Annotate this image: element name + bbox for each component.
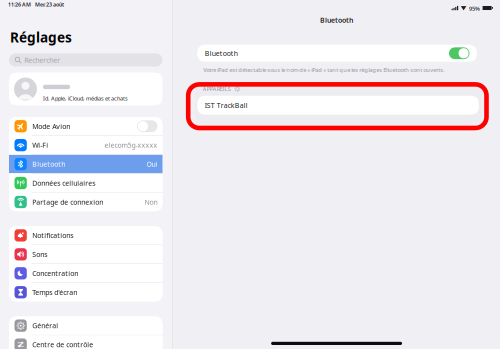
button[interactable]: Wi-Fi (9, 136, 162, 154)
staticText: elecom5g-xxxxx (104, 140, 157, 150)
staticText: Bluetooth (32, 159, 65, 169)
staticText: Bluetooth (205, 48, 238, 58)
staticText: Réglages (10, 28, 72, 46)
staticText: 11:26 AM (8, 1, 31, 8)
staticText: Id. Apple, iCloud, médias et achats (43, 95, 128, 102)
staticText: Centre de contrôle (32, 340, 93, 349)
staticText: Bluetooth (320, 15, 353, 25)
staticText: Données cellulaires (32, 178, 95, 188)
button[interactable]: Id. Apple, iCloud, médias et achats (9, 72, 162, 105)
staticText: Wi-Fi (32, 140, 48, 150)
button[interactable]: IST TrackBall (195, 96, 482, 115)
button[interactable]: Données cellulaires (9, 174, 162, 192)
staticText: APPAREILS (203, 85, 231, 93)
button[interactable]: Général (9, 316, 162, 335)
button[interactable]: Notifications (9, 226, 162, 245)
button[interactable]: Bluetooth (197, 45, 477, 62)
button[interactable]: Mode Avion (9, 117, 162, 135)
staticText: Notifications (32, 231, 73, 240)
button[interactable]: Partage de connexion (9, 193, 162, 211)
staticText: Mer. 23 août (35, 1, 64, 8)
button[interactable]: Temps d'écran (9, 283, 162, 301)
button[interactable]: Concentration (9, 264, 162, 282)
button[interactable]: Bluetooth (9, 155, 162, 173)
staticText: Rechercher (24, 55, 60, 65)
staticText: Non (144, 197, 157, 207)
staticText: Sons (32, 250, 47, 259)
staticText: Oui (146, 159, 157, 169)
staticText: Partage de connexion (32, 197, 103, 207)
staticText: 95% (469, 4, 480, 12)
button[interactable]: Sons (9, 245, 162, 263)
staticText: Temps d'écran (32, 287, 77, 297)
button[interactable]: Rechercher (9, 53, 162, 66)
staticText: Mode Avion (32, 121, 70, 131)
staticText: Général (32, 321, 58, 330)
button[interactable]: Centre de contrôle (9, 335, 162, 349)
staticText: IST TrackBall (205, 100, 248, 110)
staticText: Votre iPad est détectable sous le nom de… (203, 66, 445, 74)
staticText: Concentration (32, 269, 78, 278)
